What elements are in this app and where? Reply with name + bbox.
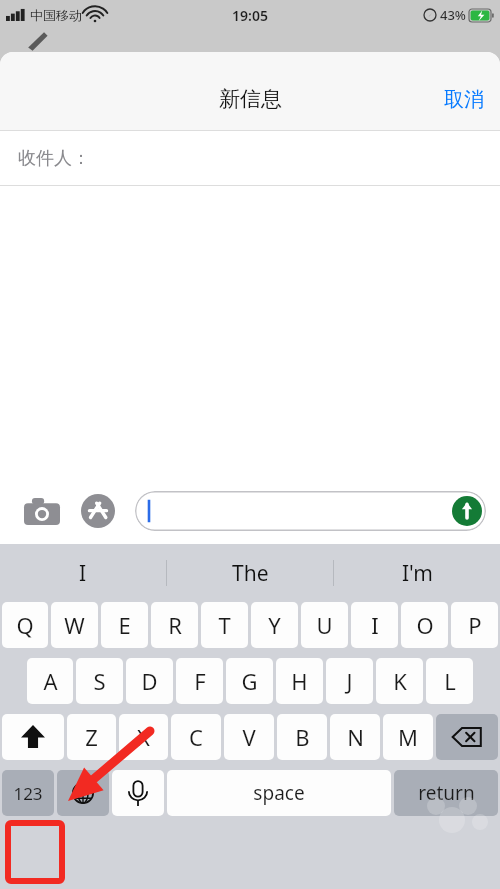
button[interactable]: return bbox=[394, 770, 498, 816]
button[interactable]: The bbox=[167, 544, 333, 602]
button[interactable]: H bbox=[276, 658, 323, 704]
button[interactable]: S bbox=[76, 658, 123, 704]
staticText: C bbox=[189, 722, 203, 752]
staticText: X bbox=[137, 722, 150, 752]
staticText: H bbox=[291, 666, 308, 696]
button[interactable]: Switch keyboard bbox=[57, 770, 109, 816]
staticText: 43% bbox=[440, 6, 466, 24]
button[interactable]: space bbox=[167, 770, 391, 816]
button[interactable]: Send bbox=[135, 491, 486, 531]
button[interactable]: M bbox=[383, 714, 433, 760]
staticText: O bbox=[416, 610, 434, 640]
staticText: 取消 bbox=[444, 87, 484, 112]
button[interactable]: Backspace bbox=[436, 714, 498, 760]
staticText: I bbox=[79, 559, 87, 588]
button[interactable]: X bbox=[119, 714, 168, 760]
button[interactable]: Q bbox=[2, 602, 48, 648]
button[interactable]: N bbox=[330, 714, 380, 760]
staticText: G bbox=[241, 666, 258, 696]
button[interactable]: V bbox=[224, 714, 274, 760]
button[interactable]: G bbox=[226, 658, 273, 704]
staticText: 19:05 bbox=[232, 6, 268, 25]
button[interactable]: J bbox=[326, 658, 373, 704]
button[interactable]: L bbox=[426, 658, 473, 704]
staticText: E bbox=[118, 610, 131, 640]
staticText: U bbox=[316, 610, 333, 640]
staticText: Y bbox=[268, 610, 281, 640]
staticText: M bbox=[398, 722, 418, 752]
button[interactable]: Shift bbox=[2, 714, 64, 760]
button[interactable]: Z bbox=[67, 714, 116, 760]
button[interactable]: A bbox=[27, 658, 73, 704]
button[interactable]: W bbox=[51, 602, 98, 648]
staticText: 新信息 bbox=[219, 86, 282, 112]
button[interactable]: I'm bbox=[334, 544, 500, 602]
button[interactable]: I bbox=[0, 544, 166, 602]
button[interactable]: 123 bbox=[2, 770, 54, 816]
button[interactable]: U bbox=[301, 602, 348, 648]
staticText: The bbox=[232, 559, 269, 588]
button[interactable]: Send bbox=[451, 495, 483, 527]
button[interactable]: Y bbox=[251, 602, 298, 648]
button[interactable]: O bbox=[401, 602, 448, 648]
button[interactable]: D bbox=[126, 658, 173, 704]
staticText: Q bbox=[16, 610, 34, 640]
staticText: V bbox=[242, 722, 256, 752]
staticText: K bbox=[393, 666, 407, 696]
staticText: W bbox=[64, 610, 85, 640]
staticText: I bbox=[371, 610, 379, 640]
staticText: N bbox=[347, 722, 364, 752]
staticText: B bbox=[295, 722, 310, 752]
button[interactable]: F bbox=[176, 658, 223, 704]
button[interactable]: C bbox=[171, 714, 221, 760]
button[interactable]: Dictate bbox=[112, 770, 164, 816]
staticText: D bbox=[141, 666, 158, 696]
staticText: I'm bbox=[402, 559, 433, 588]
staticText: S bbox=[93, 666, 106, 696]
button[interactable]: E bbox=[101, 602, 148, 648]
button[interactable]: P bbox=[451, 602, 498, 648]
staticText: F bbox=[194, 666, 206, 696]
staticText: Z bbox=[85, 722, 98, 752]
button[interactable]: I bbox=[351, 602, 398, 648]
button[interactable]: R bbox=[151, 602, 198, 648]
staticText: T bbox=[218, 610, 231, 640]
button[interactable]: 取消 bbox=[428, 81, 500, 118]
staticText: return bbox=[418, 780, 475, 806]
staticText: 收件人： bbox=[18, 147, 90, 170]
staticText: L bbox=[444, 666, 456, 696]
button[interactable]: Camera bbox=[22, 495, 62, 527]
button[interactable]: K bbox=[376, 658, 423, 704]
staticText: space bbox=[253, 780, 305, 806]
button[interactable]: 收件人： bbox=[0, 131, 500, 185]
staticText: P bbox=[468, 610, 482, 640]
staticText: 123 bbox=[13, 782, 43, 805]
button[interactable]: App Store bbox=[79, 492, 117, 530]
staticText: R bbox=[168, 610, 182, 640]
button[interactable]: T bbox=[201, 602, 248, 648]
staticText: A bbox=[43, 666, 58, 696]
button[interactable]: B bbox=[277, 714, 327, 760]
staticText: 中国移动 bbox=[30, 7, 82, 23]
staticText: J bbox=[346, 666, 353, 696]
